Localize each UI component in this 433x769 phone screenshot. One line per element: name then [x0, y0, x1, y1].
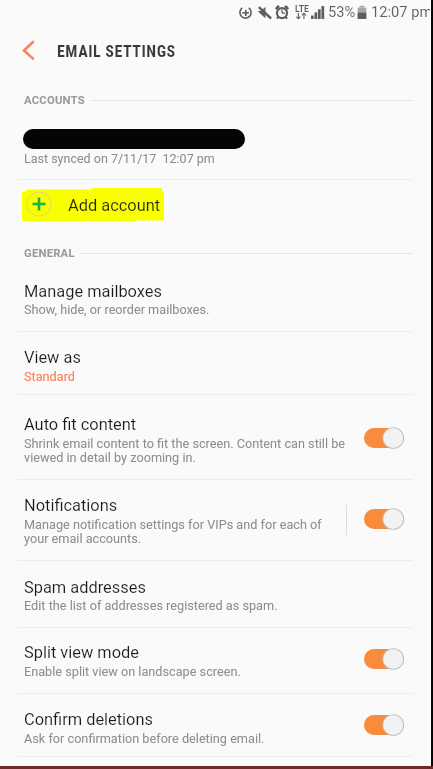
staticText: GENERAL — [24, 247, 75, 260]
button[interactable]: Add account — [0, 182, 433, 222]
staticText: Confirm deletions — [24, 710, 153, 729]
staticText: ACCOUNTS — [24, 94, 85, 107]
staticText: Ask for confirmation before deleting ema… — [24, 731, 265, 746]
button[interactable]: Navigate up — [2, 28, 56, 78]
staticText: Show, hide, or reorder mailboxes. — [24, 302, 210, 317]
staticText: EMAIL SETTINGS — [57, 42, 176, 61]
button[interactable] — [0, 394, 433, 479]
staticText: Enable split view on landscape screen. — [24, 664, 241, 679]
staticText: Notifications — [24, 496, 118, 515]
staticText: Add account — [68, 196, 161, 215]
button[interactable] — [0, 627, 433, 693]
button[interactable] — [0, 693, 433, 756]
staticText: Auto fit content — [24, 415, 137, 434]
button[interactable] — [0, 560, 433, 627]
staticText: 12:07 pm — [371, 3, 433, 20]
button[interactable]: Toggle switch, on — [364, 714, 404, 736]
staticText: Standard — [24, 369, 75, 384]
button[interactable]: Toggle switch, on — [364, 648, 404, 670]
button[interactable] — [0, 479, 433, 560]
button[interactable] — [0, 271, 433, 331]
staticText: Last synced on 7/11/17 12:07 pm — [24, 151, 215, 166]
staticText: Shrink email content to fit the screen. … — [24, 436, 346, 451]
staticText: viewed in detail by zooming in. — [24, 450, 196, 465]
button[interactable]: Toggle switch, on — [364, 508, 404, 530]
staticText: 53% — [328, 3, 356, 20]
staticText: Spam addresses — [24, 578, 146, 597]
button[interactable]: Toggle switch, on — [364, 427, 404, 449]
staticText: your email accounts. — [24, 531, 142, 546]
button[interactable] — [0, 331, 433, 394]
staticText: Manage notification settings for VIPs an… — [24, 517, 322, 532]
button[interactable] — [0, 112, 433, 172]
staticText: Edit the list of addresses registered as… — [24, 598, 278, 613]
staticText: Split view mode — [24, 643, 139, 662]
staticText: View as — [24, 348, 81, 367]
staticText: Manage mailboxes — [24, 282, 162, 301]
staticText: LTE — [295, 4, 309, 14]
